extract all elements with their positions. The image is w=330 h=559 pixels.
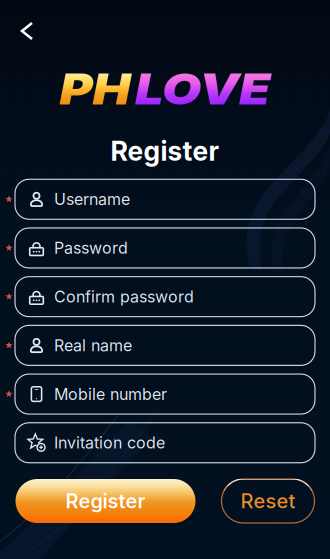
button[interactable]: Username [15,179,315,219]
button[interactable]: Invitation code [15,423,315,463]
staticText: Register [110,135,219,167]
staticText: Password [54,238,128,258]
staticText: Mobile number [54,384,167,404]
staticText: Username [54,190,130,209]
staticText: Register [65,489,145,513]
button[interactable]: Back [0,14,52,48]
button[interactable]: Confirm password [15,277,315,317]
button[interactable]: Reset [221,479,314,523]
button[interactable]: Mobile number [15,374,315,414]
staticText: Real name [54,336,132,355]
staticText: Confirm password [54,287,194,306]
button[interactable]: Real name [15,325,315,365]
staticText: Reset [240,489,295,513]
staticText: Invitation code [54,433,165,452]
button[interactable]: Register [15,479,195,523]
button[interactable]: Password [15,228,315,268]
